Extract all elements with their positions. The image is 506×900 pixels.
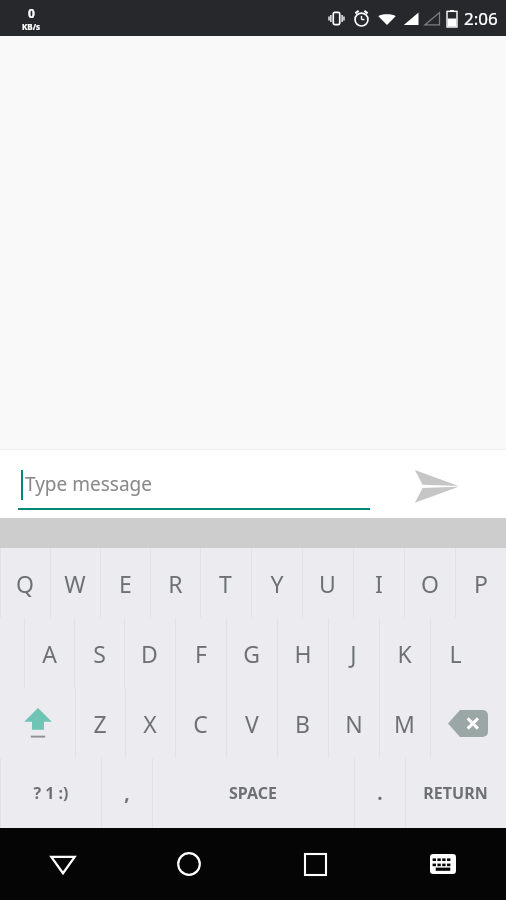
staticText: . [377,780,383,806]
staticText: E [119,568,132,599]
staticText: V [245,708,259,739]
staticText: 0 [28,5,35,21]
button[interactable]: Send [400,458,472,514]
button[interactable]: Z [75,688,125,758]
button[interactable]: ? 1 :) [0,758,101,828]
staticText: F [195,638,207,669]
staticText: O [421,568,439,599]
button[interactable]: Backspace [430,688,506,758]
staticText: D [141,638,158,669]
staticText: RETURN [423,782,488,804]
button[interactable]: N [328,688,379,758]
staticText: T [219,568,232,599]
staticText: J [350,638,357,669]
button[interactable]: . [354,758,405,828]
button[interactable]: I [353,548,404,618]
button[interactable]: X [125,688,175,758]
staticText: N [345,708,363,739]
button[interactable]: B [277,688,328,758]
staticText: , [124,780,130,806]
button[interactable]: V [226,688,277,758]
button[interactable]: Switch keyboard [379,828,506,900]
staticText: X [143,708,157,739]
button[interactable]: J [328,618,379,688]
button[interactable]: Type message [18,462,370,510]
staticText: R [168,568,183,599]
button[interactable]: SPACE [152,758,354,828]
button[interactable]: D [124,618,175,688]
staticText: L [449,638,462,669]
button[interactable]: L [430,618,481,688]
staticText: S [93,638,106,669]
staticText: B [295,708,310,739]
staticText: KB/s [22,21,40,32]
button[interactable]: C [175,688,226,758]
staticText: SPACE [229,782,277,804]
button[interactable]: R [150,548,200,618]
staticText: I [375,568,383,599]
button[interactable]: F [175,618,226,688]
staticText: H [294,638,312,669]
button[interactable]: , [101,758,152,828]
staticText: W [64,568,86,599]
staticText: M [394,708,415,739]
staticText: K [397,638,412,669]
button[interactable]: U [302,548,353,618]
button[interactable]: O [404,548,455,618]
staticText: A [42,638,57,669]
button[interactable]: P [455,548,506,618]
staticText: Y [270,568,284,599]
staticText: 2:06 [464,7,498,30]
button[interactable]: K [379,618,430,688]
button[interactable]: W [50,548,100,618]
staticText: Z [93,708,107,739]
button[interactable]: E [100,548,150,618]
staticText: Q [16,568,34,599]
button[interactable]: Recent apps [252,828,379,900]
button[interactable]: Q [0,548,50,618]
button[interactable]: T [200,548,251,618]
button[interactable]: A [24,618,74,688]
button[interactable]: S [74,618,124,688]
staticText: Type message [25,471,152,497]
button[interactable]: Home [126,828,252,900]
button[interactable]: RETURN [405,758,506,828]
button[interactable]: Y [251,548,302,618]
staticText: U [319,568,336,599]
staticText: ? 1 :) [33,782,69,804]
staticText: C [193,708,208,739]
button[interactable]: Hide keyboard [0,828,126,900]
staticText: P [474,568,488,599]
button[interactable]: M [379,688,430,758]
button[interactable]: H [277,618,328,688]
button[interactable]: Shift [0,688,75,758]
staticText: G [243,638,260,669]
button[interactable]: G [226,618,277,688]
